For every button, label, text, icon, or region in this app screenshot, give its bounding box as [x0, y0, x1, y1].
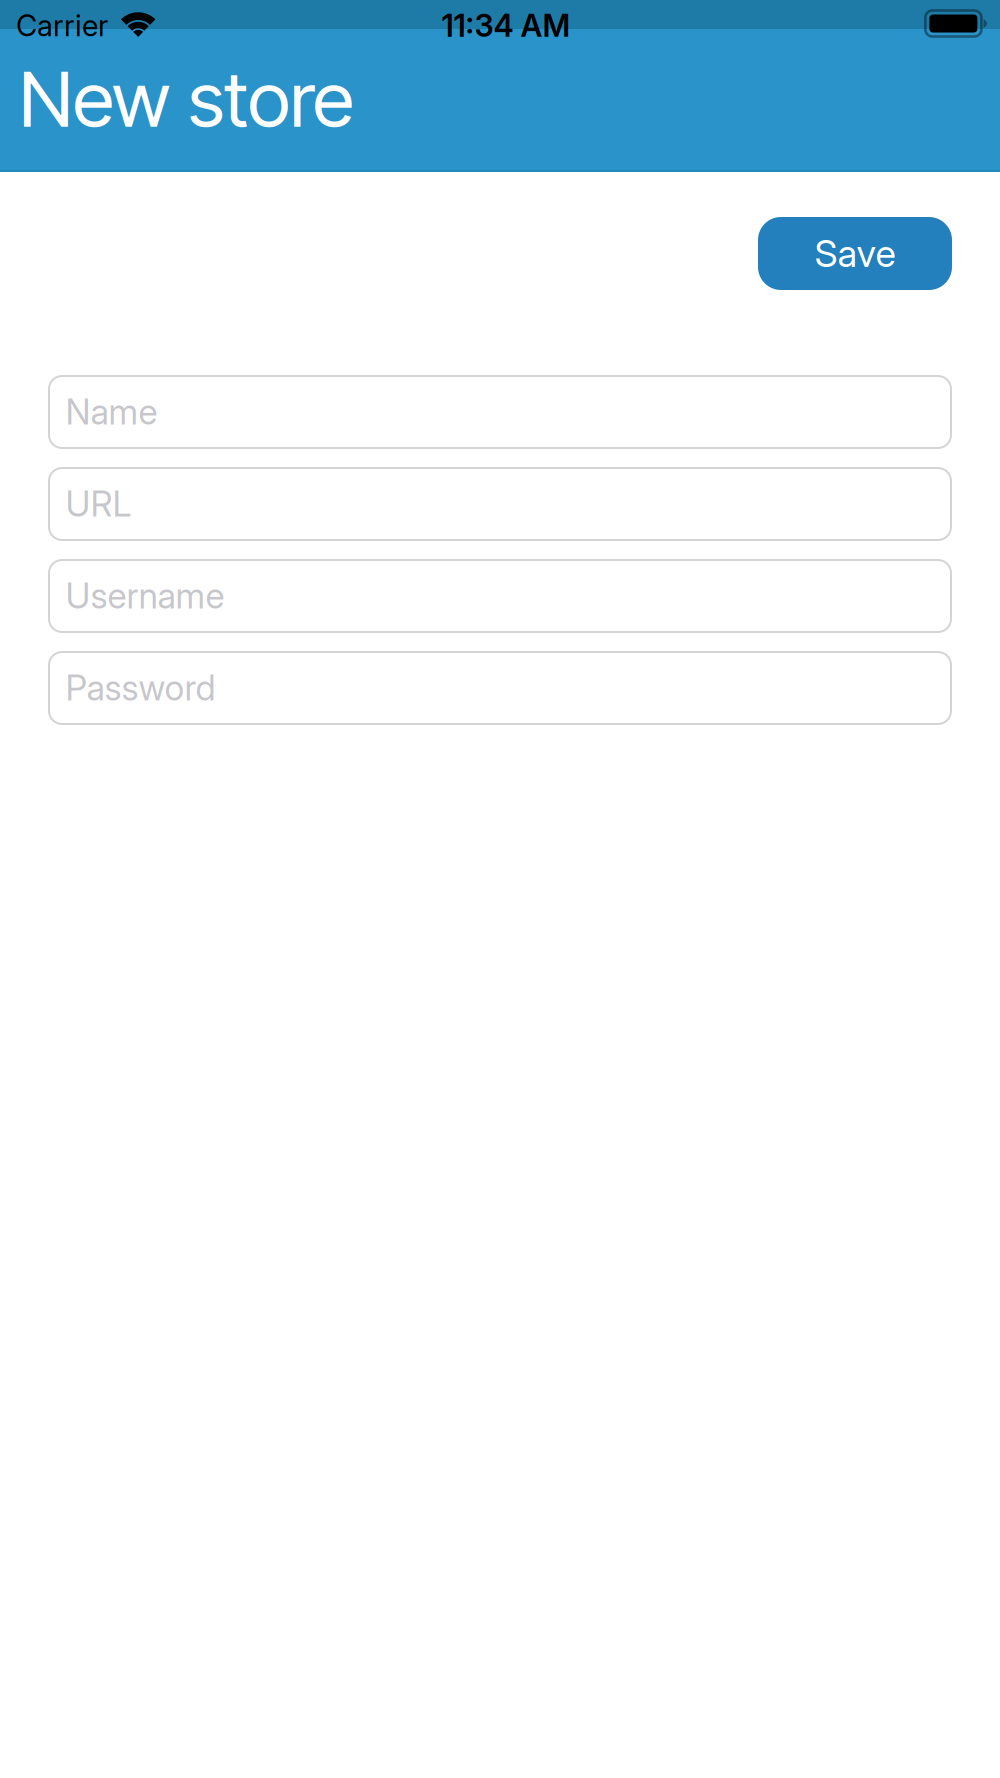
staticText: 11:34 AM: [441, 7, 570, 44]
staticText: Username: [65, 575, 224, 617]
button[interactable]: Username: [49, 560, 951, 632]
button[interactable]: Name: [49, 376, 951, 448]
button[interactable]: Save: [758, 217, 952, 290]
staticText: URL: [65, 483, 131, 525]
staticText: Save: [814, 231, 895, 276]
staticText: New store: [19, 53, 354, 145]
staticText: Name: [65, 391, 157, 433]
button[interactable]: URL: [49, 468, 951, 540]
staticText: Carrier: [16, 8, 108, 43]
button[interactable]: Password: [49, 652, 951, 724]
staticText: Password: [65, 667, 215, 709]
